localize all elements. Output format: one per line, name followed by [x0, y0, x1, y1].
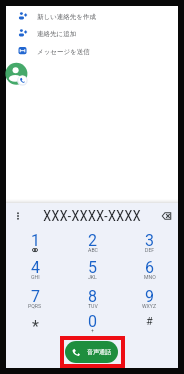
button[interactable]: 6 — [121, 258, 178, 280]
button[interactable]: 4 — [6, 258, 64, 280]
staticText: 4 — [31, 258, 40, 277]
staticText: 9 — [145, 287, 154, 306]
staticText: * — [32, 317, 39, 336]
button[interactable]: 5 — [64, 258, 121, 280]
staticText: 8 — [88, 287, 97, 306]
staticText: 6 — [145, 258, 154, 277]
button[interactable]: 3 — [121, 231, 178, 253]
button[interactable]: 2 — [64, 231, 121, 253]
button[interactable]: 0 — [64, 312, 121, 334]
staticText: 0 — [88, 312, 97, 331]
button[interactable]: 連絡先に追加 — [6, 25, 178, 43]
staticText: 3 — [145, 231, 154, 250]
button[interactable]: # — [121, 312, 178, 334]
staticText: MNO — [144, 274, 156, 280]
staticText: # — [146, 315, 153, 328]
button[interactable]: More options — [6, 203, 29, 229]
button[interactable]: 新しい連絡先を作成 — [6, 8, 178, 26]
staticText: GHI — [31, 274, 40, 280]
button[interactable]: * — [6, 312, 64, 334]
staticText: 2 — [88, 231, 97, 250]
staticText: 新しい連絡先を作成 — [37, 13, 96, 21]
staticText: DEF — [145, 247, 155, 253]
staticText: 1 — [31, 231, 40, 250]
button[interactable]: 8 — [64, 287, 121, 309]
button[interactable]: メッセージを送信 — [6, 43, 178, 61]
staticText: 7 — [31, 287, 40, 306]
staticText: 5 — [88, 258, 97, 277]
staticText: 音声通話 — [87, 348, 111, 356]
button[interactable]: 7 — [6, 287, 64, 309]
staticText: メッセージを送信 — [37, 48, 90, 56]
staticText: + — [91, 327, 94, 333]
staticText: WXYZ — [142, 303, 157, 309]
button[interactable]: 9 — [121, 287, 178, 309]
button[interactable]: 音声通話 — [65, 341, 118, 363]
staticText: ABC — [88, 247, 98, 253]
staticText: 連絡先に追加 — [37, 30, 77, 38]
staticText: PQRS — [28, 303, 42, 309]
staticText: XXX-XXXX-XXXX — [43, 207, 141, 225]
staticText: TUV — [88, 303, 98, 309]
staticText: JKL — [88, 274, 97, 280]
button[interactable]: Backspace — [155, 203, 178, 229]
button[interactable]: 1 — [6, 231, 64, 253]
